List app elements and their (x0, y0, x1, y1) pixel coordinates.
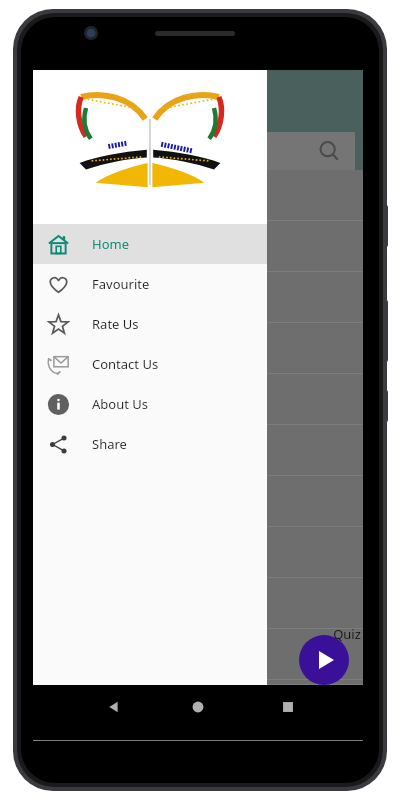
button[interactable] (33, 639, 363, 690)
button[interactable]: Quiz (299, 625, 363, 685)
button[interactable] (33, 282, 363, 333)
button[interactable] (33, 231, 363, 282)
button[interactable] (33, 690, 363, 741)
button[interactable] (33, 588, 363, 639)
button[interactable] (33, 384, 363, 435)
staticText: Contact Us (92, 355, 159, 373)
button[interactable]: Rate Us (33, 304, 267, 344)
staticText: Dimasa (51, 88, 118, 114)
staticText: Quiz (333, 625, 361, 643)
staticText: Favourite (92, 275, 150, 293)
button[interactable] (33, 486, 363, 537)
button[interactable]: Back (101, 694, 127, 720)
button[interactable]: Recent apps (275, 694, 301, 720)
button[interactable]: Share (33, 424, 267, 464)
button[interactable] (33, 180, 363, 231)
button[interactable]: Contact Us (33, 344, 267, 384)
button[interactable] (33, 435, 363, 486)
button[interactable]: About Us (33, 384, 267, 424)
staticText: Rate Us (92, 315, 139, 333)
button[interactable]: Favourite (33, 264, 267, 304)
staticText: Home (92, 235, 129, 253)
button[interactable]: Home (33, 224, 267, 264)
button[interactable] (33, 333, 363, 384)
button[interactable]: Home (185, 694, 211, 720)
staticText: Share (92, 435, 127, 453)
button[interactable] (47, 132, 355, 170)
staticText: About Us (92, 395, 149, 413)
button[interactable] (33, 537, 363, 588)
